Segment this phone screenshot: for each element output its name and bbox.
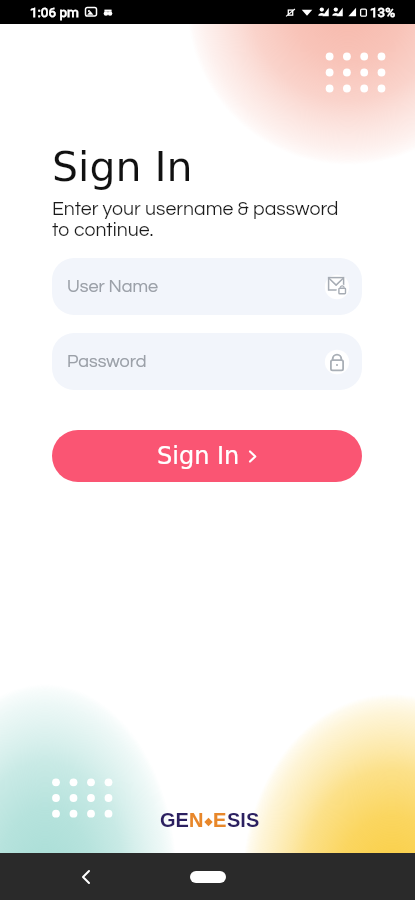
staticText: Password (67, 352, 147, 371)
staticText: 13% (370, 4, 396, 20)
staticText: Sign In (52, 143, 193, 191)
button[interactable]: Password (52, 333, 362, 390)
button[interactable]: Sign In (52, 430, 362, 482)
staticText: Sign In (157, 442, 240, 470)
staticText: User Name (67, 277, 159, 296)
staticText: E (213, 809, 227, 831)
staticText: 1:06 pm (30, 4, 79, 20)
button[interactable]: User Name (52, 258, 362, 315)
staticText: Enter your username & password to contin… (52, 199, 339, 240)
button[interactable]: Back (72, 863, 100, 891)
button[interactable]: Home (190, 871, 226, 883)
staticText: N (189, 809, 204, 831)
staticText: SIS (227, 809, 260, 831)
staticText: GE (160, 809, 189, 831)
